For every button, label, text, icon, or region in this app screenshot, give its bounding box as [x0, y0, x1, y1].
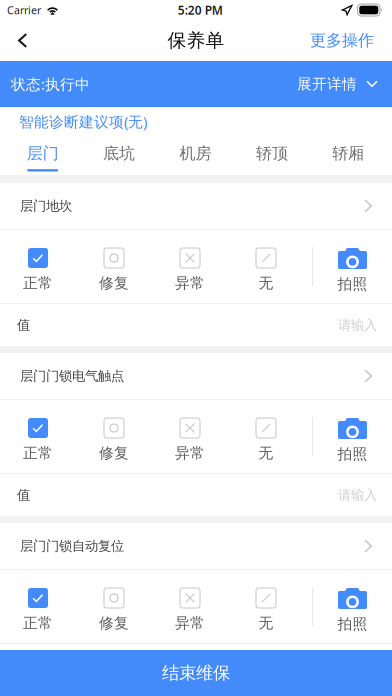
button[interactable]: 轿顶 [234, 136, 310, 175]
button[interactable]: 异常 [152, 570, 228, 643]
staticText: 请输入 [338, 317, 377, 333]
staticText: 状态:执行中 [11, 74, 90, 94]
button[interactable]: 轿厢 [310, 136, 386, 175]
button[interactable]: 状态:执行中 [0, 61, 392, 107]
button[interactable]: 拍照 [313, 400, 392, 473]
button[interactable]: 修复 [76, 400, 152, 473]
button[interactable]: 无 [228, 400, 304, 473]
button[interactable]: 正常 [0, 230, 76, 303]
button[interactable]: 正常 [0, 570, 76, 643]
staticText: 结束维保 [162, 662, 230, 684]
staticText: 异常 [175, 614, 205, 632]
staticText: 拍照 [337, 275, 367, 293]
staticText: 智能诊断建议项(无) [19, 112, 147, 131]
staticText: 层门门锁自动复位 [20, 538, 124, 554]
button[interactable]: 更多操作 [310, 20, 392, 61]
button[interactable]: 值 [0, 474, 392, 516]
button[interactable]: 拍照 [313, 230, 392, 303]
staticText: 轿厢 [332, 143, 364, 163]
staticText: 修复 [99, 444, 129, 462]
staticText: 保养单 [167, 29, 224, 52]
button[interactable]: 修复 [76, 230, 152, 303]
button[interactable]: 结束维保 [0, 650, 392, 696]
staticText: 异常 [175, 444, 205, 462]
staticText: 值 [17, 487, 30, 503]
button[interactable]: 返回 [0, 20, 46, 61]
staticText: 拍照 [337, 445, 367, 463]
button[interactable]: 层门门锁电气触点 [0, 353, 392, 399]
button[interactable]: 底坑 [81, 136, 157, 175]
staticText: 异常 [175, 274, 205, 292]
staticText: 正常 [23, 274, 53, 292]
button[interactable]: 层门门锁自动复位 [0, 523, 392, 569]
button[interactable]: 值 [0, 304, 392, 346]
staticText: 无 [258, 614, 273, 632]
staticText: 无 [258, 274, 273, 292]
staticText: 无 [258, 444, 273, 462]
staticText: 机房 [179, 143, 211, 163]
staticText: 拍照 [337, 615, 367, 633]
button[interactable]: 异常 [152, 230, 228, 303]
button[interactable]: 智能诊断建议项(无) [0, 107, 147, 136]
staticText: 层门 [27, 143, 59, 163]
staticText: 5:20 PM [178, 2, 223, 18]
staticText: 更多操作 [310, 31, 374, 50]
button[interactable]: 无 [228, 230, 304, 303]
staticText: Carrier [7, 3, 41, 17]
button[interactable]: 修复 [76, 570, 152, 643]
button[interactable]: 无 [228, 570, 304, 643]
staticText: 正常 [23, 444, 53, 462]
staticText: 轿顶 [256, 143, 288, 163]
staticText: 修复 [99, 274, 129, 292]
staticText: 展开详情 [297, 75, 357, 93]
staticText: 正常 [23, 614, 53, 632]
staticText: 请输入 [338, 487, 377, 503]
button[interactable]: 层门地坎 [0, 183, 392, 229]
staticText: 值 [17, 317, 30, 333]
button[interactable]: 拍照 [313, 570, 392, 643]
staticText: 层门门锁电气触点 [20, 368, 124, 384]
button[interactable]: 正常 [0, 400, 76, 473]
staticText: 层门地坎 [20, 198, 72, 214]
button[interactable]: 层门 [4, 136, 81, 175]
button[interactable]: 异常 [152, 400, 228, 473]
button[interactable]: 机房 [157, 136, 234, 175]
staticText: 修复 [99, 614, 129, 632]
button[interactable]: 值 [0, 644, 392, 686]
staticText: 底坑 [103, 143, 135, 163]
